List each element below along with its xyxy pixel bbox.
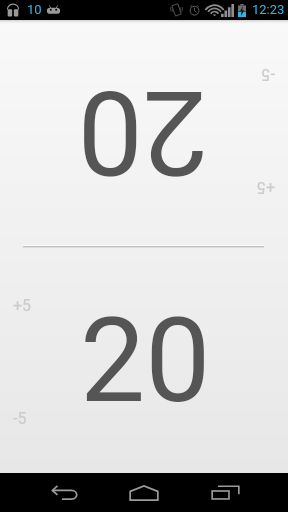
button[interactable]: Home bbox=[104, 473, 184, 512]
staticText: +5 bbox=[13, 296, 32, 315]
button[interactable]: 20 bbox=[0, 247, 288, 473]
button[interactable]: 20 bbox=[0, 20, 288, 246]
staticText: 10 bbox=[27, 2, 42, 17]
staticText: 20 bbox=[77, 64, 208, 200]
button[interactable]: Recent apps bbox=[185, 473, 265, 512]
button[interactable]: -5 bbox=[13, 409, 27, 428]
staticText: 20 bbox=[80, 293, 211, 429]
button[interactable]: Back bbox=[25, 473, 105, 512]
button[interactable]: -5 bbox=[261, 65, 275, 84]
button[interactable]: +5 bbox=[256, 178, 275, 197]
staticText: -5 bbox=[261, 65, 275, 84]
button[interactable]: +5 bbox=[13, 296, 32, 315]
staticText: 12:23 bbox=[252, 2, 285, 17]
staticText: -5 bbox=[13, 409, 27, 428]
staticText: +5 bbox=[256, 178, 275, 197]
